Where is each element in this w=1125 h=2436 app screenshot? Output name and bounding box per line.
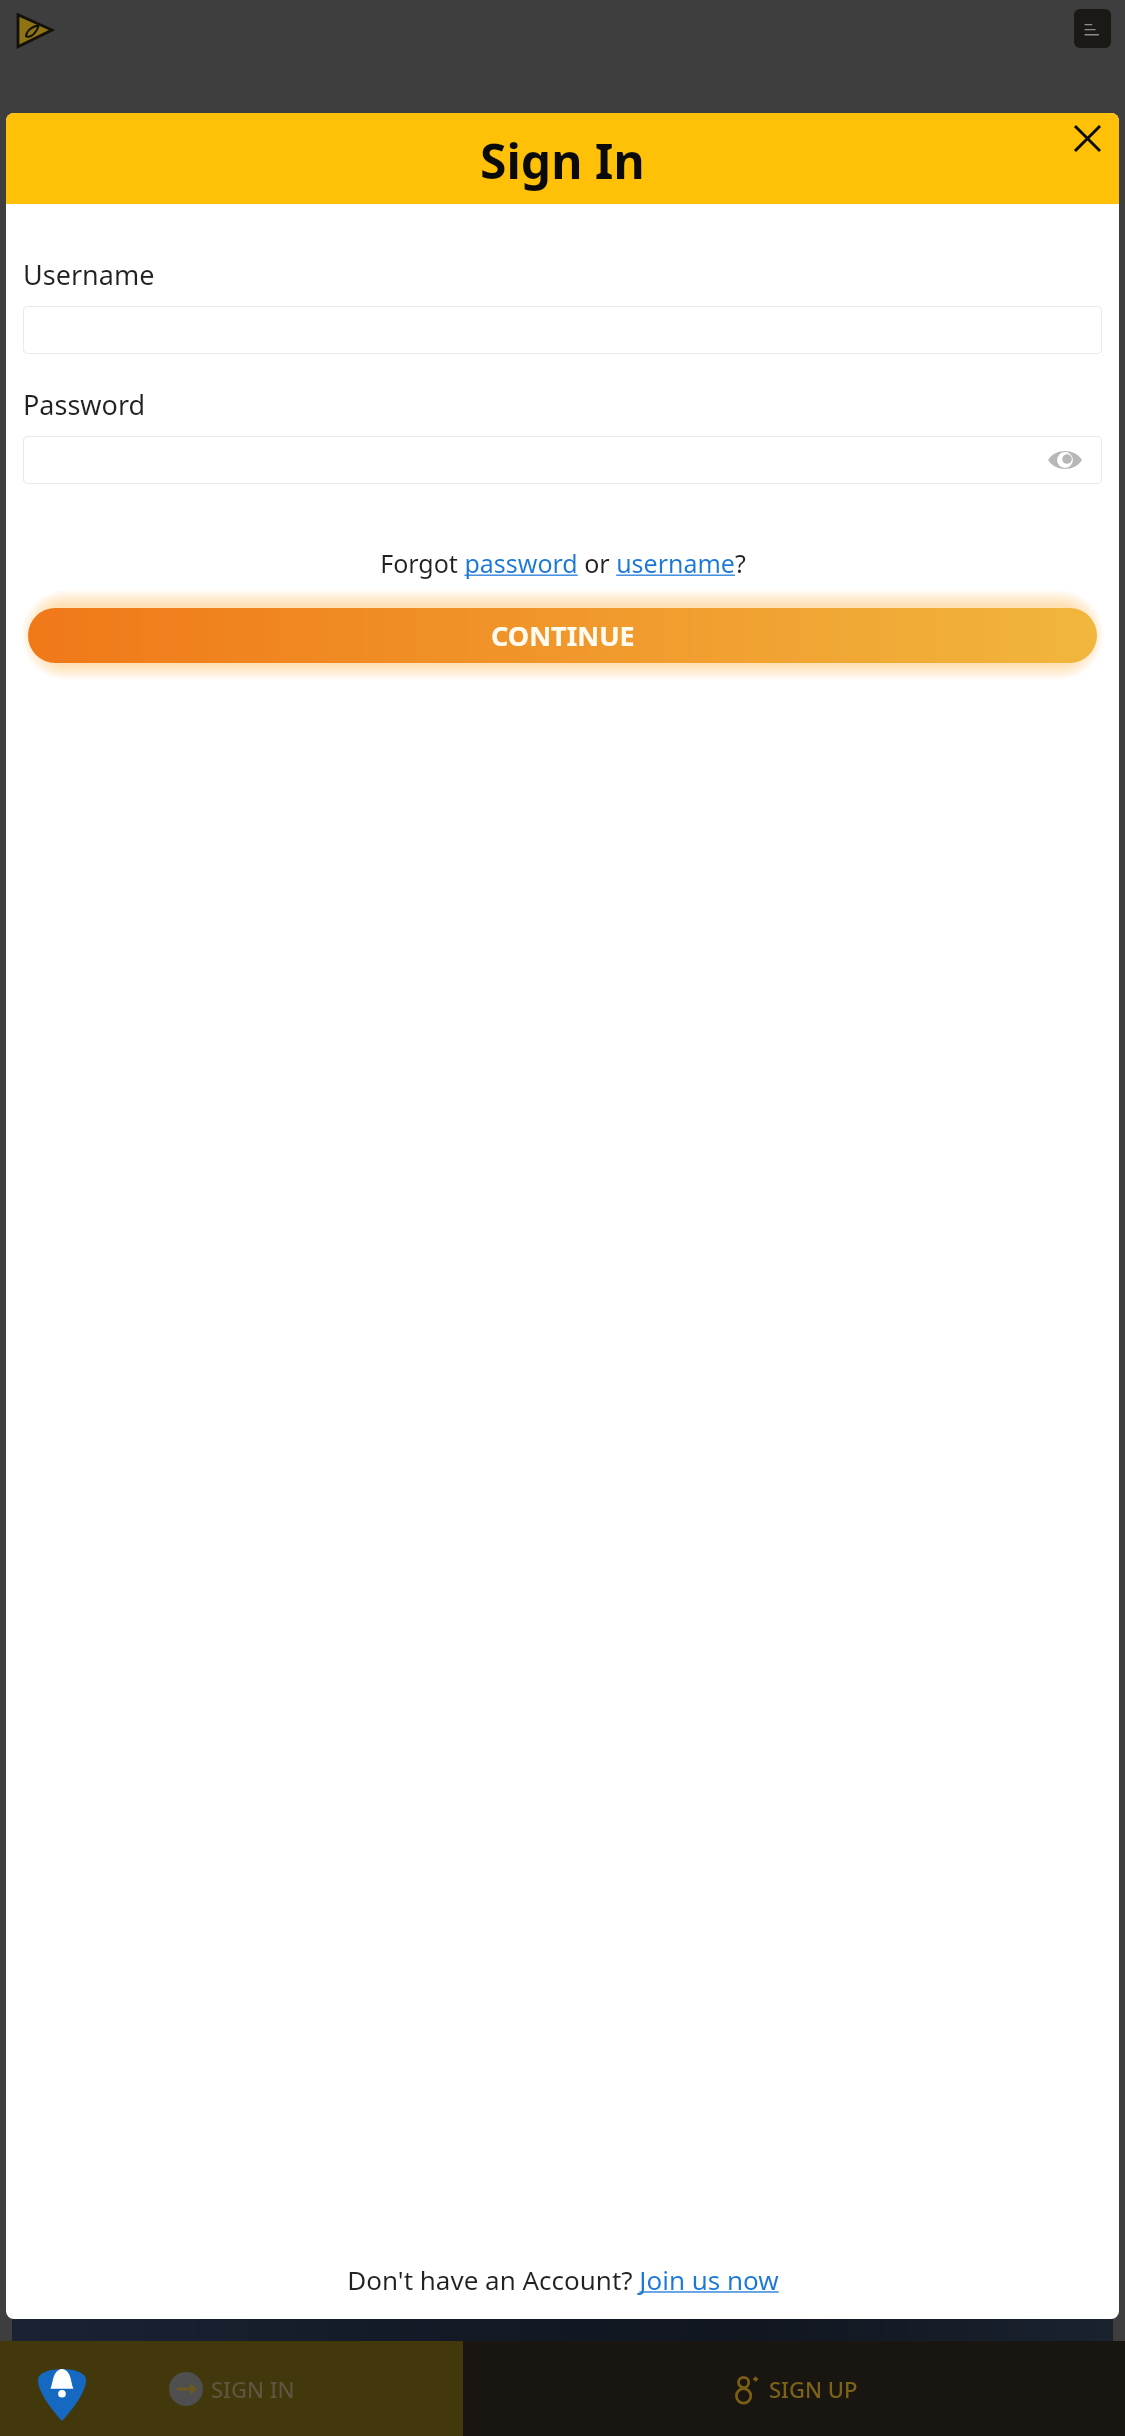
- staticText: SIGN IN: [211, 2374, 295, 2404]
- button[interactable]: Show password: [1048, 448, 1082, 472]
- button[interactable]: Show password: [23, 436, 1102, 484]
- staticText: Username: [23, 256, 155, 293]
- staticText: CONTINUE: [491, 617, 635, 654]
- staticText: Sign In: [480, 128, 645, 193]
- button[interactable]: SIGN UP: [463, 2341, 1125, 2436]
- button[interactable]: CONTINUE: [28, 608, 1097, 663]
- button[interactable]: Close: [1067, 118, 1107, 158]
- button[interactable]: Forgot password or username?: [380, 546, 746, 580]
- button[interactable]: Don't have an Account? Join us now: [347, 2262, 779, 2297]
- button[interactable]: Home: [14, 10, 54, 50]
- button[interactable]: Menu: [1074, 9, 1111, 48]
- button[interactable]: SIGN IN: [0, 2341, 463, 2436]
- button[interactable]: Notifications: [38, 2359, 86, 2421]
- staticText: SIGN UP: [769, 2374, 858, 2404]
- staticText: Password: [23, 386, 146, 423]
- button[interactable]: [23, 306, 1102, 354]
